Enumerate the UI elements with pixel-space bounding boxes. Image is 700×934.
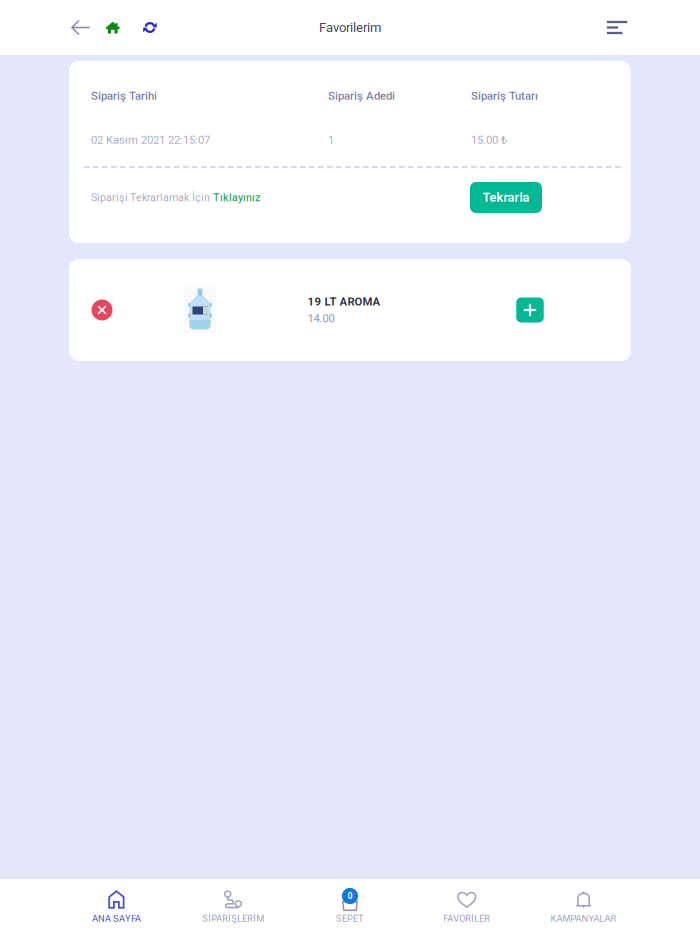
- staticText: 1: [328, 133, 334, 147]
- button[interactable]: 0: [292, 879, 408, 934]
- button[interactable]: Refresh: [143, 9, 157, 45]
- staticText: 0: [347, 891, 352, 901]
- staticText: SEPET: [336, 913, 364, 924]
- button[interactable]: Back: [71, 9, 90, 45]
- staticText: 02 Kasım 2021 22:15:07: [91, 133, 210, 147]
- button[interactable]: ANA SAYFA: [58, 879, 175, 934]
- staticText: Sipariş Adedi: [328, 89, 395, 103]
- staticText: Sipariş Tarihi: [91, 89, 157, 103]
- staticText: Tıklayınız: [213, 191, 260, 204]
- staticText: Sipariş Tutarı: [471, 89, 538, 103]
- staticText: Favorilerim: [319, 20, 381, 35]
- staticText: FAVORİLER: [443, 913, 490, 924]
- button[interactable]: Tekrarla: [470, 182, 542, 213]
- button[interactable]: FAVORİLER: [408, 879, 525, 934]
- staticText: Tekrarla: [482, 190, 529, 205]
- button[interactable]: Siparişi Tekrarlamak İçin: [91, 182, 470, 213]
- button[interactable]: Add: [511, 291, 548, 328]
- button[interactable]: Home: [105, 9, 120, 45]
- staticText: Siparişi Tekrarlamak İçin: [91, 191, 213, 204]
- staticText: 19 LT AROMA: [307, 295, 380, 308]
- staticText: SİPARİŞLERİM: [202, 913, 264, 924]
- button[interactable]: KAMPANYALAR: [525, 879, 642, 934]
- button[interactable]: Menu: [607, 9, 627, 45]
- button[interactable]: SİPARİŞLERİM: [175, 879, 292, 934]
- staticText: KAMPANYALAR: [551, 913, 617, 924]
- staticText: 15.00 ₺: [471, 133, 507, 147]
- button[interactable]: Remove: [83, 291, 120, 328]
- staticText: 14.00: [307, 312, 334, 325]
- staticText: ANA SAYFA: [92, 913, 141, 924]
